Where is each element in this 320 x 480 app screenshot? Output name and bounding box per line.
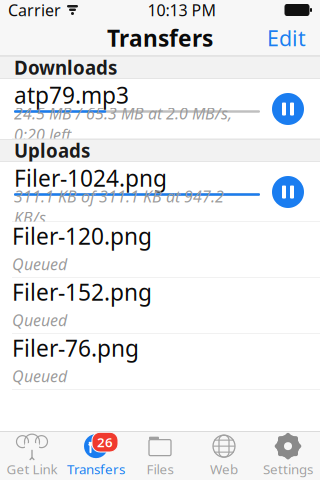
button[interactable]: Pause: [268, 172, 308, 212]
staticText: Filer-120.png: [12, 221, 152, 251]
button[interactable]: Files: [128, 431, 192, 480]
staticText: Web: [210, 460, 238, 478]
button[interactable]: Get Link: [0, 431, 64, 480]
staticText: Filer-152.png: [12, 277, 152, 307]
staticText: 26: [97, 433, 113, 451]
staticText: Settings: [263, 460, 313, 478]
staticText: 311.1 KB of 311.1 KB at 947.2 KB/s: [14, 186, 224, 228]
staticText: Uploads: [14, 138, 90, 163]
staticText: Get Link: [6, 460, 57, 478]
staticText: Queued: [12, 309, 67, 331]
button[interactable]: 26: [64, 431, 128, 480]
button[interactable]: Web: [192, 431, 256, 480]
staticText: Edit: [267, 24, 306, 52]
staticText: Files: [146, 460, 173, 478]
staticText: Filer-76.png: [12, 333, 139, 363]
staticText: 24.5 MB / 65.3 MB at 2.0 MB/s, 0:20 left: [14, 103, 232, 145]
button[interactable]: Edit: [257, 16, 316, 60]
button[interactable]: Pause: [268, 89, 308, 129]
button[interactable]: Filer-76.png: [0, 334, 320, 390]
button[interactable]: Filer-1024.png: [0, 162, 320, 222]
staticText: Carrier: [8, 0, 61, 21]
staticText: Transfers: [67, 460, 125, 478]
staticText: Transfers: [107, 23, 213, 53]
button[interactable]: Filer-120.png: [0, 222, 320, 278]
staticText: atp79.mp3: [14, 80, 129, 110]
staticText: Downloads: [14, 55, 117, 80]
staticText: 10:13 PM: [147, 0, 216, 21]
button[interactable]: Settings: [256, 431, 320, 480]
staticText: Filer-1024.png: [14, 163, 167, 193]
staticText: Queued: [12, 253, 67, 275]
staticText: Queued: [12, 365, 67, 387]
button[interactable]: atp79.mp3: [0, 79, 320, 139]
button[interactable]: Filer-152.png: [0, 278, 320, 334]
